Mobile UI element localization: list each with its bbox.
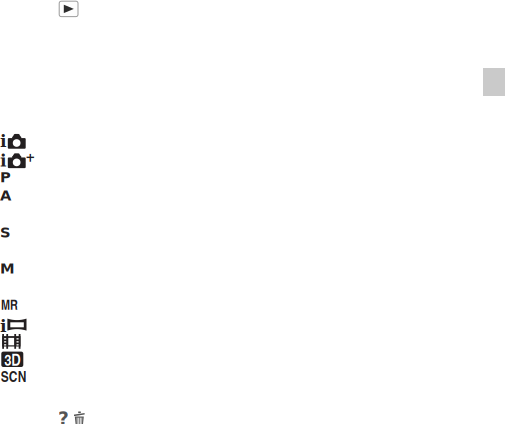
button[interactable]: Play bbox=[59, 1, 78, 17]
staticText: M bbox=[0, 260, 15, 277]
button[interactable]: Delete bbox=[74, 409, 85, 423]
staticText: A bbox=[0, 187, 11, 204]
staticText: SCN bbox=[1, 366, 27, 386]
staticText: S bbox=[0, 224, 11, 241]
staticText: + bbox=[25, 151, 35, 165]
button[interactable]: Help bbox=[58, 408, 69, 424]
staticText: i bbox=[0, 150, 7, 171]
staticText: ? bbox=[58, 408, 69, 424]
staticText: P bbox=[0, 169, 11, 186]
staticText: i bbox=[0, 316, 7, 336]
staticText: i bbox=[0, 131, 7, 151]
staticText: MR bbox=[1, 295, 18, 314]
staticText: 3D bbox=[4, 348, 20, 371]
